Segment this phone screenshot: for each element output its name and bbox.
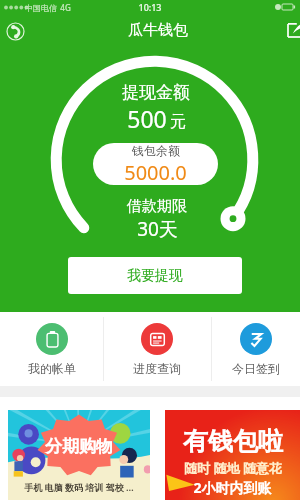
staticText: 中国电信 [25, 3, 57, 13]
staticText: 随时 随地 随意花 [184, 459, 282, 477]
staticText: 有钱包啦 [183, 426, 283, 457]
button[interactable]: 我要提现 [68, 257, 242, 294]
staticText: 4G [60, 2, 71, 13]
staticText: 提现金额 [122, 82, 190, 103]
staticText: 钱包余额 [132, 143, 180, 158]
staticText: 我要提现 [127, 267, 183, 285]
staticText: 500 [127, 103, 167, 134]
staticText: 我的帐单 [28, 361, 76, 376]
staticText: 进度查询 [133, 361, 181, 376]
staticText: 元 [170, 112, 186, 132]
staticText: 今日签到 [232, 361, 280, 376]
button[interactable]: 客服电话 [5, 21, 25, 41]
button[interactable]: 分期购物 [8, 410, 150, 500]
staticText: 分期购物 [45, 436, 113, 457]
staticText: 10:13 [138, 1, 162, 13]
button[interactable]: 今日签到 [211, 312, 300, 386]
button[interactable]: 有钱包啦 [165, 410, 300, 500]
staticText: 5000.0 [124, 159, 187, 185]
staticText: 手机 电脑 数码 培训 驾校 … [24, 481, 134, 493]
staticText: 2小时内到账 [193, 478, 272, 497]
button[interactable]: 进度查询 [103, 312, 211, 386]
staticText: 瓜牛钱包 [128, 21, 188, 40]
button[interactable]: 我的帐单 [0, 312, 103, 386]
button[interactable]: 分享 [285, 18, 300, 40]
button[interactable]: 钱包余额 [93, 143, 218, 185]
staticText: 30天 [137, 216, 178, 242]
staticText: 借款期限 [127, 197, 187, 216]
